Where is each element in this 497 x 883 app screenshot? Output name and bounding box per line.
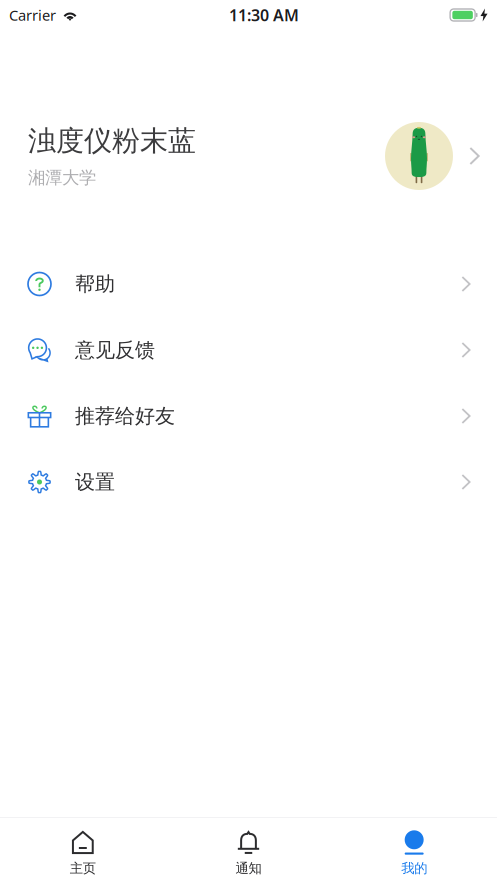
staticText: 推荐给好友 (75, 404, 175, 428)
staticText: 主页 (70, 860, 96, 876)
button[interactable]: 意见反馈 (0, 317, 497, 383)
button[interactable]: 我的 (331, 818, 497, 883)
button[interactable]: 通知 (166, 818, 331, 883)
button[interactable]: 设置 (0, 449, 497, 515)
staticText: 帮助 (75, 272, 115, 296)
staticText: 通知 (235, 860, 261, 876)
button[interactable]: 浊度仪粉末蓝 (0, 121, 497, 191)
button[interactable]: 推荐给好友 (0, 383, 497, 449)
staticText: Carrier (9, 5, 56, 25)
staticText: 我的 (401, 860, 427, 876)
staticText: 11:30 AM (229, 4, 299, 26)
staticText: 设置 (75, 470, 115, 494)
button[interactable]: 帮助 (0, 251, 497, 317)
staticText: 浊度仪粉末蓝 (28, 124, 196, 158)
button[interactable]: 主页 (0, 818, 166, 883)
staticText: 意见反馈 (75, 338, 155, 362)
staticText: 湘潭大学 (28, 167, 96, 188)
